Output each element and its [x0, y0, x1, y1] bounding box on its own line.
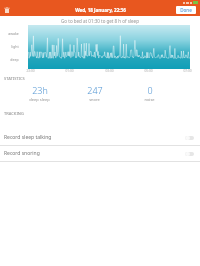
staticText: 01:00	[65, 69, 74, 73]
staticText: 23h	[32, 84, 48, 96]
staticText: 03:00	[105, 69, 114, 73]
staticText: STATISTICS	[4, 76, 25, 81]
staticText: 07:00	[183, 69, 192, 73]
button[interactable]: Done	[176, 6, 196, 14]
button[interactable]: Delete	[2, 5, 12, 15]
staticText: Record sleep talking	[4, 134, 185, 141]
staticText: TRACKING	[4, 111, 24, 116]
button[interactable]: 23h	[12, 84, 67, 102]
button[interactable]: Record sleep talking	[0, 130, 200, 145]
staticText: 247	[87, 84, 103, 96]
staticText: noise	[144, 97, 155, 102]
staticText: awake	[8, 31, 19, 36]
staticText: 0	[147, 84, 153, 96]
staticText: Wed, 18 January, 22:36	[75, 7, 126, 13]
button[interactable]: 247	[67, 84, 122, 102]
staticText: 23:00	[26, 69, 35, 73]
staticText: Record snoring	[4, 150, 185, 157]
button[interactable]: 0	[122, 84, 177, 102]
staticText: Done	[180, 7, 192, 13]
staticText: deep sleep	[29, 97, 50, 102]
staticText: 05:00	[144, 69, 153, 73]
staticText: deep	[10, 57, 19, 62]
staticText: light	[11, 44, 19, 49]
button[interactable]: Record snoring	[0, 146, 200, 161]
staticText: snore	[89, 97, 100, 102]
staticText: Go to bed at 01:30 to get 8 h of sleep	[61, 18, 139, 24]
